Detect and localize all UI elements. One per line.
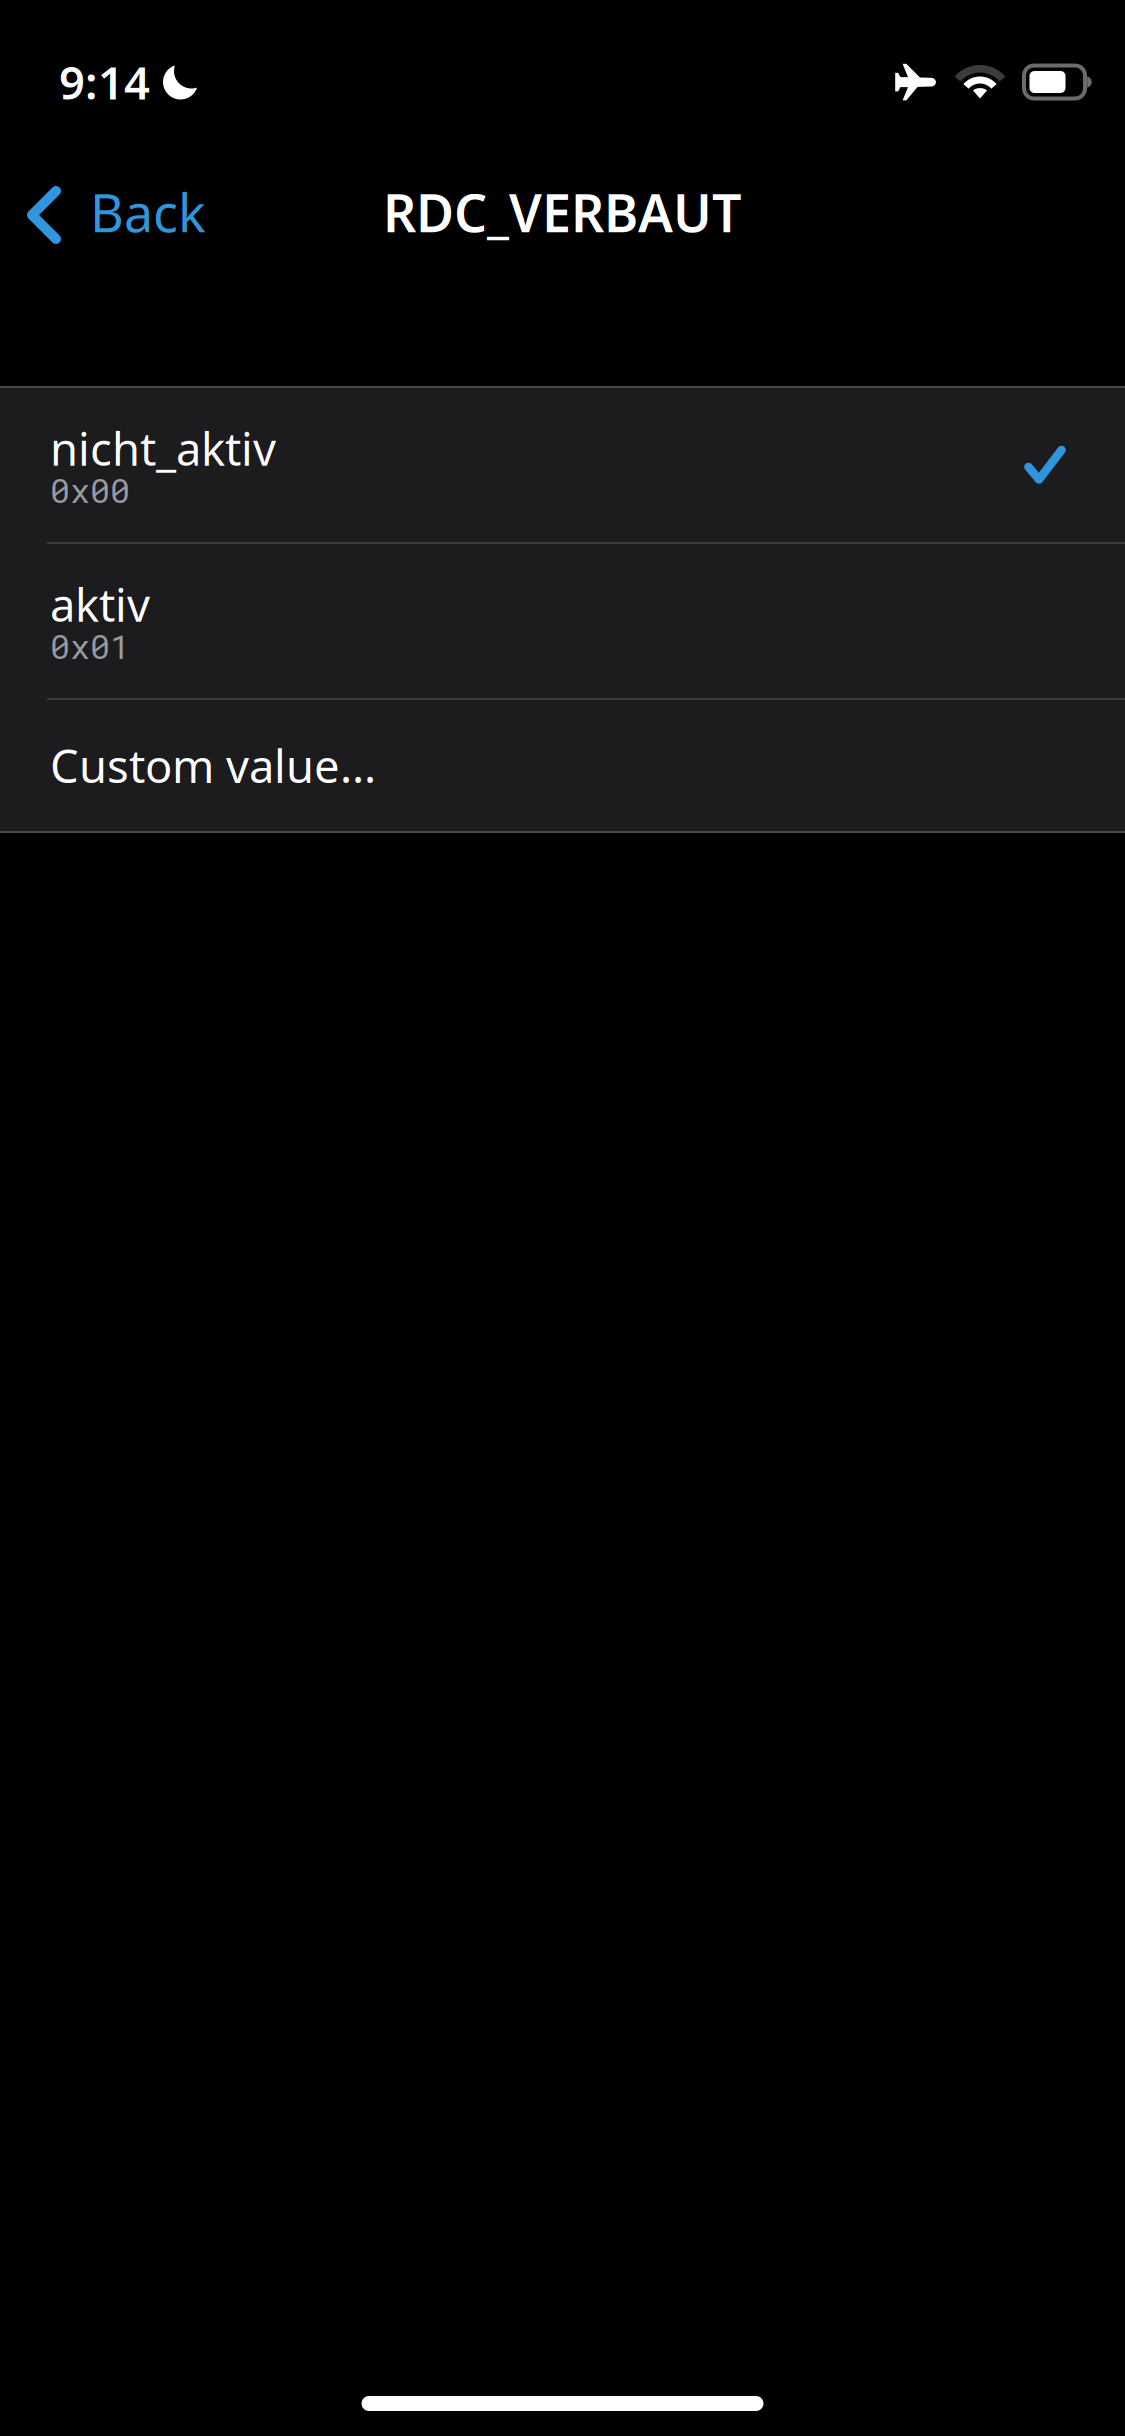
staticText: aktiv: [50, 574, 150, 634]
staticText: nicht_aktiv: [50, 418, 276, 478]
staticText: Back: [90, 177, 206, 247]
button[interactable]: Custom value...: [0, 700, 1125, 831]
staticText: Custom value...: [50, 735, 376, 796]
button[interactable]: Back: [0, 184, 223, 240]
staticText: 0x00: [50, 468, 130, 512]
button[interactable]: aktiv: [0, 544, 1125, 698]
staticText: RDC_VERBAUT: [383, 177, 742, 247]
button[interactable]: nicht_aktiv: [0, 388, 1125, 542]
staticText: 0x01: [50, 624, 130, 668]
staticText: 9:14: [59, 52, 150, 112]
